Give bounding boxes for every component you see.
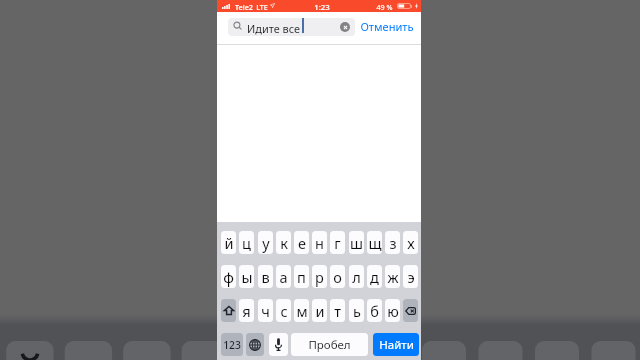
staticText: 123 <box>223 338 241 352</box>
staticText: ч <box>261 301 270 321</box>
staticText: я <box>242 301 251 321</box>
staticText: л <box>352 267 361 287</box>
button[interactable]: Пробел <box>291 333 368 356</box>
staticText: д <box>370 267 379 287</box>
button[interactable]: е <box>294 231 309 254</box>
staticText: 1:23 <box>314 2 330 13</box>
button[interactable]: в <box>258 265 273 288</box>
staticText: ф <box>223 267 234 287</box>
button[interactable]: 123 <box>221 333 243 356</box>
button[interactable]: ц <box>239 231 254 254</box>
staticText: ю <box>387 301 399 321</box>
staticText: г <box>334 233 341 253</box>
button[interactable]: ч <box>258 299 273 322</box>
button[interactable]: ы <box>239 265 254 288</box>
staticText: о <box>333 267 342 287</box>
button[interactable]: ж <box>385 265 400 288</box>
staticText: LTE <box>256 2 268 12</box>
staticText: у <box>262 233 270 253</box>
button[interactable]: г <box>330 231 345 254</box>
staticText: 49 % <box>376 2 393 12</box>
staticText: Tele2 <box>235 2 253 12</box>
button[interactable]: ь <box>349 299 364 322</box>
staticText: а <box>279 267 288 287</box>
button[interactable]: и <box>312 299 327 322</box>
button[interactable]: й <box>221 231 236 254</box>
staticText: х <box>407 233 415 253</box>
button[interactable]: Dictation <box>269 333 288 356</box>
staticText: ц <box>242 233 251 253</box>
button[interactable]: Отменить <box>357 17 417 36</box>
staticText: щ <box>368 233 382 253</box>
staticText: и <box>315 301 325 321</box>
button[interactable]: с <box>276 299 291 322</box>
button[interactable]: п <box>294 265 309 288</box>
staticText: ы <box>241 267 253 287</box>
button[interactable]: щ <box>367 231 382 254</box>
staticText: й <box>224 233 234 253</box>
button[interactable]: т <box>330 299 345 322</box>
button[interactable]: б <box>367 299 382 322</box>
staticText: з <box>389 233 397 253</box>
staticText: ш <box>350 233 363 253</box>
staticText: р <box>315 267 324 287</box>
button[interactable]: ю <box>385 299 400 322</box>
staticText: э <box>407 267 415 287</box>
staticText: Отменить <box>360 19 414 34</box>
button[interactable]: з <box>385 231 400 254</box>
staticText: в <box>261 267 270 287</box>
staticText: Идите все <box>247 21 300 36</box>
button[interactable]: Switch keyboard language <box>246 333 264 356</box>
button[interactable]: р <box>312 265 327 288</box>
button[interactable]: Clear text <box>340 22 350 32</box>
button[interactable]: Идите все <box>228 18 355 36</box>
button[interactable]: у <box>258 231 273 254</box>
button[interactable]: м <box>294 299 309 322</box>
button[interactable]: о <box>330 265 345 288</box>
staticText: Пробел <box>308 337 351 353</box>
button[interactable]: Shift <box>221 299 236 322</box>
button[interactable]: х <box>403 231 418 254</box>
button[interactable]: н <box>312 231 327 254</box>
staticText: Найти <box>379 337 414 353</box>
button[interactable]: Найти <box>373 333 419 356</box>
staticText: ж <box>387 267 399 287</box>
button[interactable]: ф <box>221 265 236 288</box>
button[interactable]: к <box>276 231 291 254</box>
staticText: е <box>298 233 306 253</box>
button[interactable]: э <box>403 265 418 288</box>
button[interactable]: ш <box>349 231 364 254</box>
staticText: т <box>334 301 341 321</box>
staticText: п <box>297 267 306 287</box>
button[interactable]: Backspace <box>403 299 418 322</box>
staticText: ь <box>353 301 361 321</box>
button[interactable]: я <box>239 299 254 322</box>
staticText: с <box>280 301 288 321</box>
button[interactable]: д <box>367 265 382 288</box>
button[interactable]: л <box>349 265 364 288</box>
staticText: м <box>296 301 308 321</box>
staticText: б <box>370 301 379 321</box>
button[interactable]: а <box>276 265 291 288</box>
staticText: н <box>315 233 324 253</box>
staticText: к <box>280 233 288 253</box>
